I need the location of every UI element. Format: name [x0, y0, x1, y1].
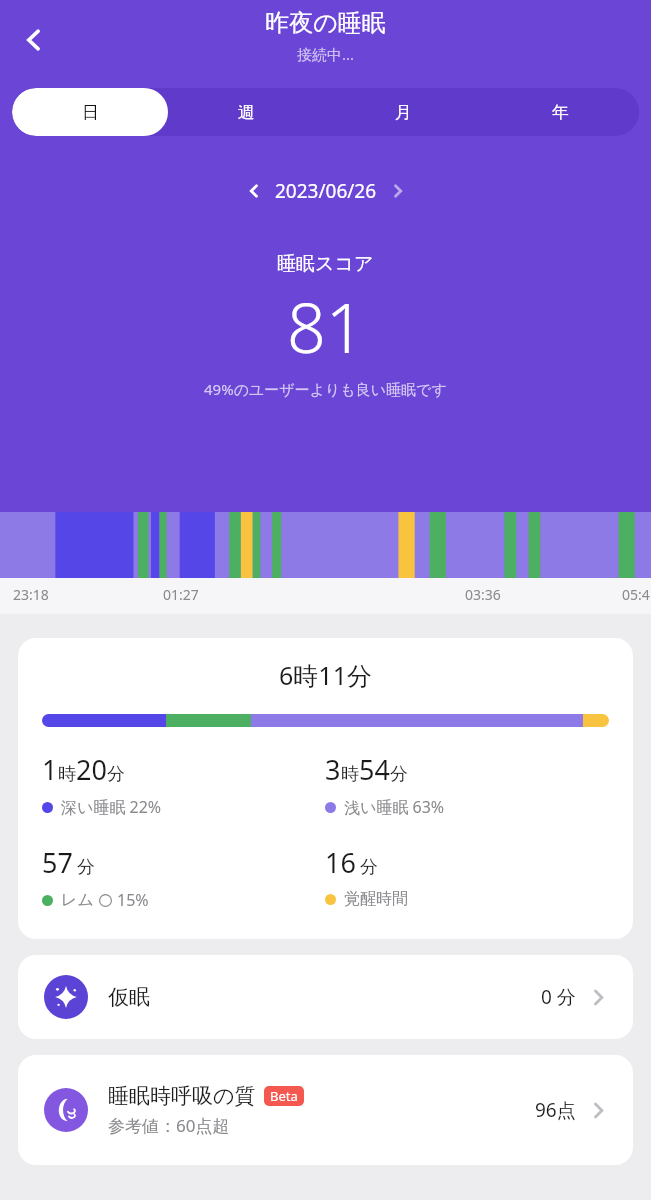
staticText: 16: [325, 844, 356, 881]
staticText: 20: [76, 751, 107, 788]
staticText: 01:27: [163, 585, 199, 604]
staticText: 参考値：60点超: [108, 1114, 230, 1137]
staticText: 2023/06/26: [275, 178, 377, 204]
staticText: 睡眠スコア: [277, 252, 374, 276]
staticText: 接続中...: [297, 44, 355, 64]
staticText: 0 分: [541, 984, 576, 1010]
staticText: 仮眠: [108, 984, 150, 1010]
staticText: 時: [58, 763, 76, 786]
button[interactable]: 仮眠: [18, 955, 633, 1039]
staticText: 81: [287, 280, 365, 373]
button[interactable]: Previous day: [237, 174, 271, 208]
staticText: Beta: [270, 1087, 298, 1105]
staticText: 15%: [117, 889, 149, 911]
staticText: 浅い睡眠 63%: [344, 796, 445, 818]
staticText: 54: [359, 751, 390, 788]
staticText: 分: [107, 763, 125, 786]
staticText: 昨夜の睡眠: [265, 8, 386, 38]
staticText: 年: [552, 102, 569, 123]
staticText: 週: [238, 102, 255, 123]
button[interactable]: 週: [168, 88, 325, 136]
button[interactable]: 6時11分: [18, 638, 633, 939]
staticText: 日: [82, 102, 99, 123]
button[interactable]: Back: [8, 14, 60, 66]
staticText: 6時11分: [42, 658, 609, 692]
staticText: 05:4: [622, 585, 650, 604]
staticText: 覚醒時間: [344, 889, 408, 909]
button[interactable]: 日: [12, 88, 168, 136]
staticText: 睡眠時呼吸の質: [108, 1083, 256, 1109]
staticText: 23:18: [13, 585, 49, 604]
staticText: 分: [360, 856, 378, 879]
staticText: 分: [390, 763, 408, 786]
staticText: 1: [42, 751, 58, 788]
staticText: 49%のユーザーよりも良い睡眠です: [204, 379, 447, 399]
staticText: 03:36: [465, 585, 501, 604]
button[interactable]: 月: [325, 88, 482, 136]
staticText: レム: [61, 890, 94, 910]
staticText: 月: [395, 102, 412, 123]
staticText: 3: [325, 751, 341, 788]
staticText: 57: [42, 844, 73, 881]
button[interactable]: 年: [482, 88, 639, 136]
staticText: 分: [77, 856, 95, 879]
staticText: 時: [341, 763, 359, 786]
button[interactable]: 睡眠時呼吸の質: [18, 1055, 633, 1165]
staticText: 96点: [535, 1097, 576, 1123]
staticText: 深い睡眠 22%: [61, 796, 162, 818]
button[interactable]: Next day: [381, 174, 415, 208]
